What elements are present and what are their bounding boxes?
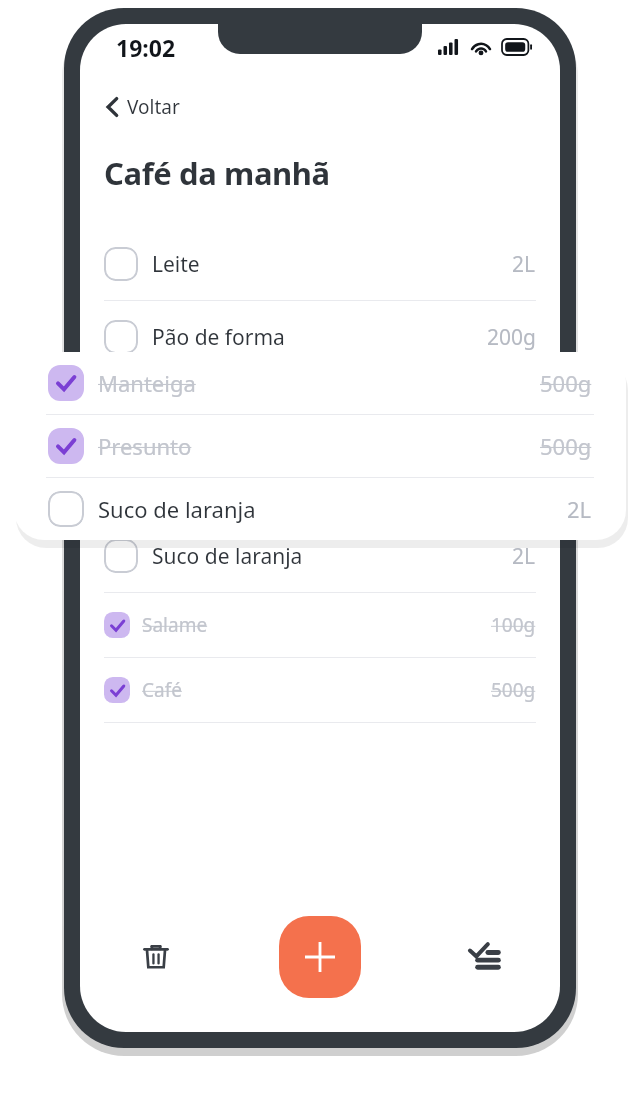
button[interactable]: Check all — [458, 931, 510, 983]
staticText: 2L — [512, 542, 536, 571]
staticText: 2L — [567, 494, 592, 524]
staticText: Leite — [152, 250, 200, 279]
button[interactable]: Café — [80, 658, 560, 722]
staticText: Salame — [142, 612, 208, 638]
staticText: 19:02 — [116, 32, 176, 63]
button[interactable]: Delete — [130, 931, 182, 983]
button[interactable]: Manteiga — [14, 352, 626, 414]
staticText: 500g — [487, 396, 536, 425]
staticText: 500g — [487, 469, 536, 498]
staticText: 500g — [540, 431, 592, 461]
button[interactable]: Pão de forma — [80, 301, 560, 373]
button[interactable]: Suco de laranja — [14, 478, 626, 540]
button[interactable]: Presunto — [14, 415, 626, 477]
button[interactable]: Voltar — [102, 90, 184, 124]
staticText: Café da manhã — [104, 152, 330, 194]
staticText: Manteiga — [98, 368, 196, 398]
staticText: Manteiga — [152, 396, 246, 425]
staticText: Pão de forma — [152, 323, 285, 352]
staticText: 500g — [540, 368, 592, 398]
staticText: 100g — [491, 612, 536, 638]
button[interactable]: Suco de laranja — [80, 520, 560, 592]
staticText: 2L — [512, 250, 536, 279]
staticText: 500g — [491, 677, 536, 703]
button[interactable]: Leite — [80, 228, 560, 300]
button[interactable]: Presunto — [80, 447, 560, 519]
staticText: 200g — [487, 323, 536, 352]
button[interactable]: Add item — [279, 916, 361, 998]
button[interactable]: Salame — [80, 593, 560, 657]
staticText: Suco de laranja — [152, 542, 303, 571]
staticText: Presunto — [152, 469, 242, 498]
staticText: Café — [142, 677, 182, 703]
staticText: Voltar — [127, 94, 180, 120]
staticText: Presunto — [98, 431, 192, 461]
button[interactable]: Manteiga — [80, 374, 560, 446]
staticText: Suco de laranja — [98, 494, 256, 524]
